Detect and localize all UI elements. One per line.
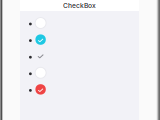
button[interactable]: Checkbox sample 2 [20, 31, 139, 48]
button[interactable]: Checkbox sample 1 [20, 15, 139, 31]
staticText: CheckBox [63, 1, 96, 10]
button[interactable]: Checkbox sample 5 [20, 81, 139, 98]
button[interactable]: Checkbox sample 4 [20, 64, 139, 81]
button[interactable]: Checkbox sample 3 [20, 48, 139, 64]
